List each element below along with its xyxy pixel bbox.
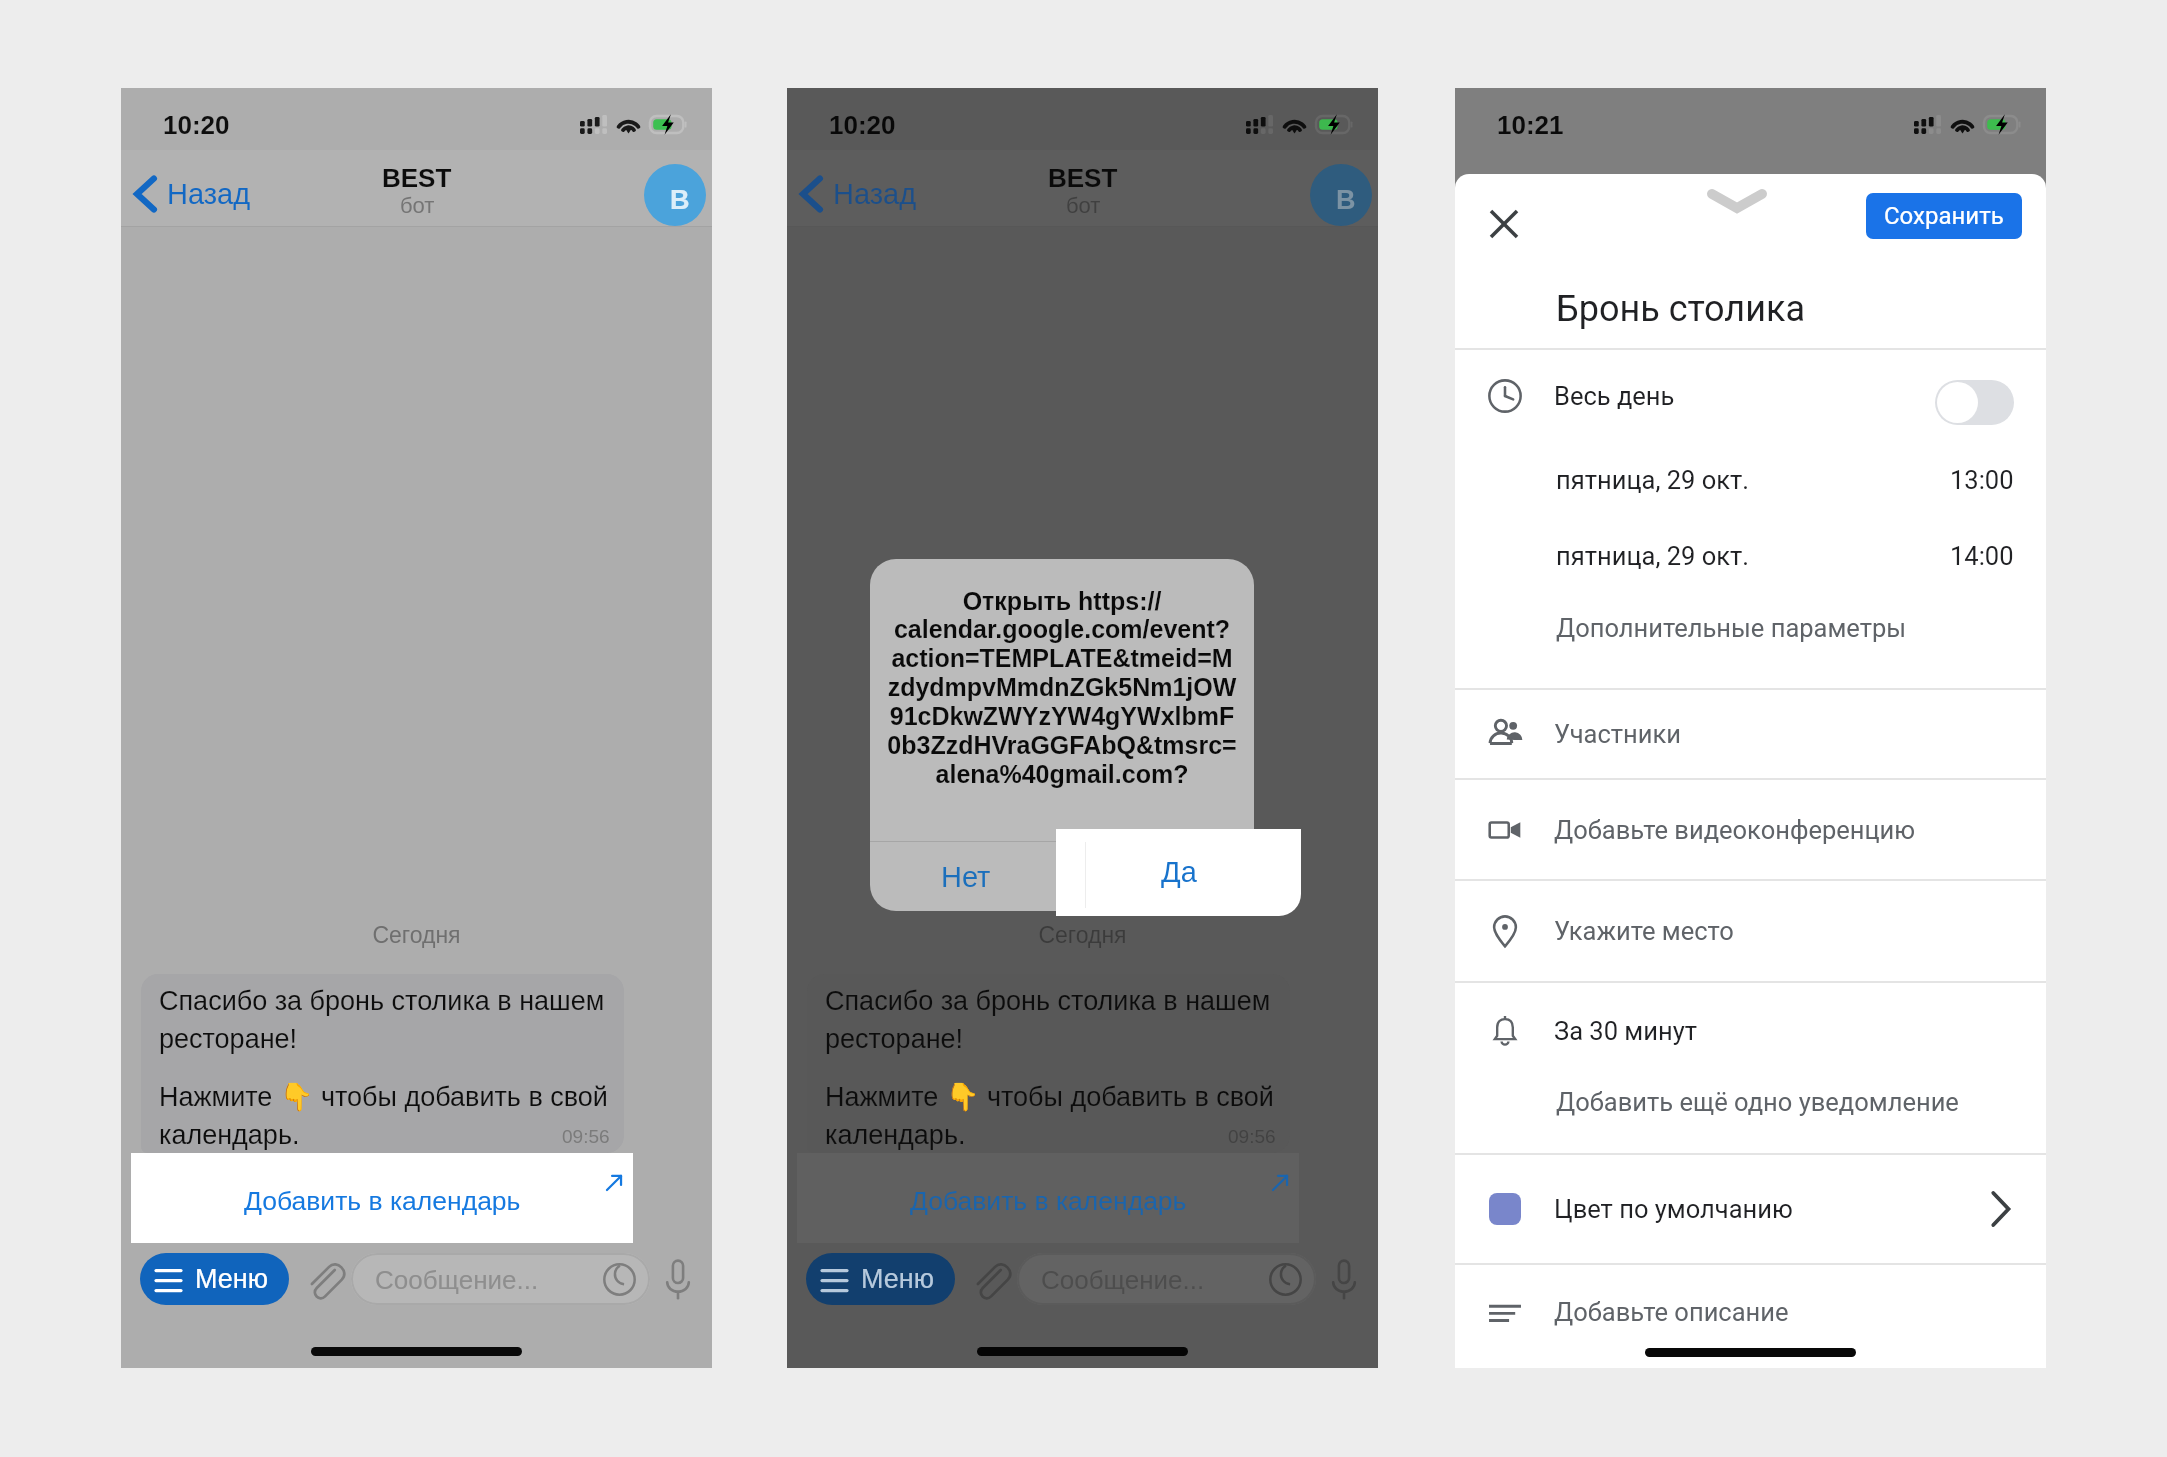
staticText: пятница, 29 окт. <box>1556 541 1750 571</box>
staticText: бот <box>1066 193 1101 218</box>
button[interactable]: Меню <box>806 1253 955 1305</box>
staticText: BEST <box>1048 163 1118 192</box>
staticText: 10:21 <box>1497 110 1564 139</box>
staticText: Бронь столика <box>1556 288 1805 330</box>
staticText: Сегодня <box>121 922 712 948</box>
staticText: Нажмите 👇 чтобы добавить в свой календар… <box>159 1081 608 1149</box>
staticText: Участники <box>1554 719 1682 749</box>
button[interactable]: Цвет по умолчанию <box>1455 1155 2046 1263</box>
staticText: Да <box>1161 856 1197 888</box>
staticText: Открыть https:// calendar.google.com/eve… <box>887 587 1237 789</box>
button[interactable]: Да <box>1062 842 1254 911</box>
staticText: Добавить в календарь <box>244 1186 521 1216</box>
button[interactable]: Добавить ещё одно уведомление <box>1455 1078 2046 1153</box>
staticText: Весь день <box>1554 381 1675 411</box>
staticText: Меню <box>195 1264 268 1294</box>
staticText: Да <box>1140 861 1176 893</box>
staticText: Дополнительные параметры <box>1556 613 1907 643</box>
staticText: BEST <box>382 163 452 192</box>
button[interactable]: Добавить в календарь <box>797 1153 1299 1243</box>
button[interactable]: Весь день <box>1455 350 2046 442</box>
staticText: 09:56 <box>562 1126 610 1147</box>
button[interactable]: Голосовое сообщение <box>656 1257 700 1301</box>
button[interactable]: За 30 минут <box>1455 983 2046 1078</box>
staticText: 14:00 <box>1950 541 2014 571</box>
staticText: Сегодня <box>787 922 1378 948</box>
button[interactable]: Да <box>1056 829 1301 916</box>
staticText: B <box>1336 185 1356 215</box>
button[interactable]: Дополнительные параметры <box>1455 594 2046 688</box>
button[interactable]: Добавьте описание <box>1455 1265 2046 1358</box>
button[interactable]: Прикрепить <box>299 1254 349 1304</box>
button[interactable]: Голосовое сообщение <box>1322 1257 1366 1301</box>
staticText: Сообщение... <box>1041 1265 1205 1294</box>
staticText: пятница, 29 окт. <box>1556 465 1750 495</box>
staticText: Добавить в календарь <box>910 1186 1187 1216</box>
button[interactable]: Участники <box>1455 690 2046 778</box>
button[interactable]: пятница, 29 окт. <box>1455 442 2046 518</box>
button[interactable]: Назад <box>787 168 927 220</box>
staticText: Добавьте видеоконференцию <box>1554 815 1916 845</box>
button[interactable]: пятница, 29 окт. <box>1455 518 2046 594</box>
staticText: Спасибо за бронь столика в нашем рестора… <box>825 986 1271 1053</box>
button[interactable]: Профиль BEST <box>644 164 706 226</box>
button[interactable]: Профиль BEST <box>1310 164 1372 226</box>
staticText: Добавьте описание <box>1554 1297 1789 1327</box>
staticText: 10:20 <box>163 110 230 139</box>
button[interactable]: Сообщение... <box>1017 1253 1316 1305</box>
staticText: Укажите место <box>1554 916 1734 946</box>
staticText: Назад <box>167 178 251 210</box>
staticText: B <box>670 185 690 215</box>
staticText: Цвет по умолчанию <box>1554 1194 1793 1224</box>
staticText: бот <box>400 193 435 218</box>
staticText: 09:56 <box>1228 1126 1276 1147</box>
button[interactable]: Прикрепить <box>965 1254 1015 1304</box>
button[interactable]: Нет <box>870 842 1061 911</box>
staticText: Нет <box>941 861 991 893</box>
staticText: Сохранить <box>1884 202 2004 230</box>
staticText: Добавить ещё одно уведомление <box>1556 1087 1959 1117</box>
button[interactable]: Меню <box>140 1253 289 1305</box>
staticText: Сообщение... <box>375 1265 539 1294</box>
staticText: За 30 минут <box>1554 1016 1697 1046</box>
button[interactable]: Сообщение... <box>351 1253 650 1305</box>
staticText: Спасибо за бронь столика в нашем рестора… <box>159 986 605 1053</box>
staticText: Назад <box>833 178 917 210</box>
button[interactable] <box>1935 380 2014 425</box>
button[interactable]: Закрыть <box>1476 196 1532 252</box>
staticText: 10:20 <box>829 110 896 139</box>
button[interactable]: Сохранить <box>1866 193 2022 239</box>
button[interactable]: Назад <box>121 168 261 220</box>
staticText: Нажмите 👇 чтобы добавить в свой календар… <box>825 1081 1274 1149</box>
staticText: 13:00 <box>1950 465 2014 495</box>
button[interactable]: Добавить в календарь <box>131 1153 633 1243</box>
button[interactable]: Добавьте видеоконференцию <box>1455 780 2046 879</box>
staticText: Меню <box>861 1264 934 1294</box>
button[interactable]: Укажите место <box>1455 881 2046 981</box>
